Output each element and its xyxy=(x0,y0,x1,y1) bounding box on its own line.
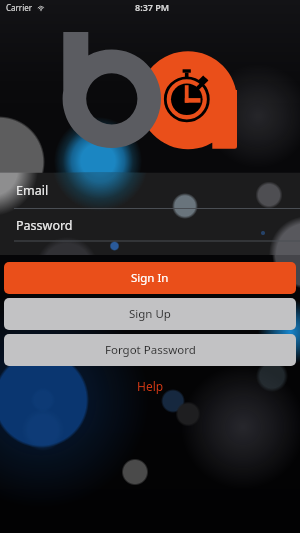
staticText: Email xyxy=(16,182,49,199)
staticText: Carrier xyxy=(6,2,33,13)
button[interactable]: Help xyxy=(137,378,164,394)
staticText: 8:37 PM xyxy=(135,1,170,13)
button[interactable]: Forgot Password xyxy=(4,334,296,366)
staticText: Password xyxy=(16,217,73,234)
staticText: Sign In xyxy=(131,270,169,286)
staticText: Sign Up xyxy=(129,306,171,322)
button[interactable]: Sign In xyxy=(4,262,296,294)
button[interactable]: Sign Up xyxy=(4,298,296,330)
staticText: Forgot Password xyxy=(105,342,196,358)
button[interactable]: Email xyxy=(0,173,300,208)
button[interactable]: Password xyxy=(0,209,300,241)
